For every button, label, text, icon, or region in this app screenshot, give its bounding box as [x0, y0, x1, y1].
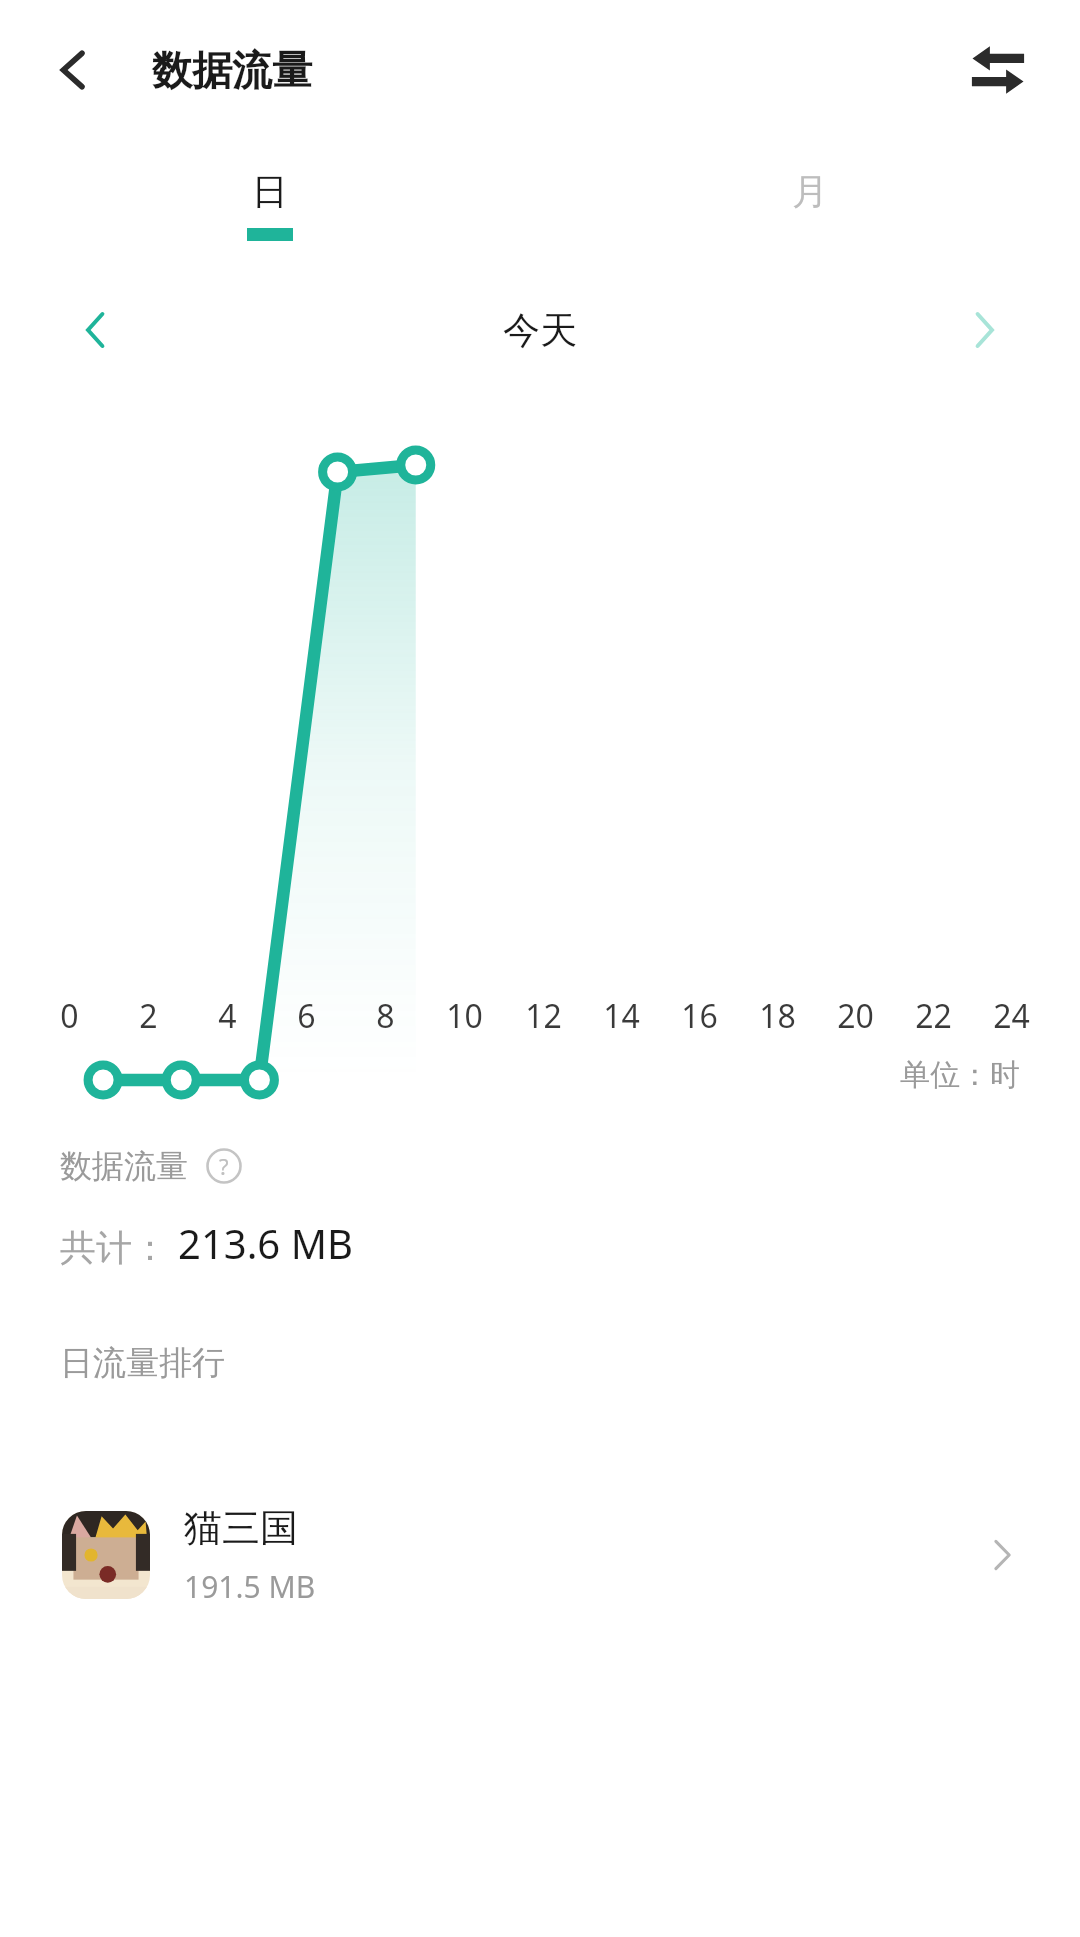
staticText: 18 [759, 994, 796, 1038]
staticText: 191.5 MB [184, 1566, 316, 1607]
staticText: 6 [297, 994, 316, 1038]
button[interactable]: 猫三国 [0, 1480, 1080, 1630]
staticText: 10 [446, 994, 483, 1038]
button[interactable]: Back [30, 26, 118, 114]
staticText: 0 [60, 994, 79, 1038]
staticText: 日 [252, 169, 288, 214]
staticText: 共计： [60, 1225, 168, 1270]
staticText: 日流量排行 [60, 1342, 225, 1384]
staticText: 22 [915, 994, 952, 1038]
staticText: 24 [993, 994, 1030, 1038]
other: Details [972, 1525, 1032, 1585]
staticText: 20 [837, 994, 874, 1038]
staticText: 8 [376, 994, 395, 1038]
button[interactable]: 日 [0, 140, 540, 270]
staticText: 数据流量 [152, 45, 312, 95]
button[interactable]: Next day [942, 288, 1026, 372]
staticText: 月 [792, 169, 828, 214]
staticText: 12 [525, 994, 562, 1038]
staticText: 213.6 MB [178, 1216, 353, 1270]
staticText: 16 [681, 994, 718, 1038]
button[interactable]: Previous day [54, 288, 138, 372]
button[interactable]: Help [202, 1144, 246, 1188]
staticText: 猫三国 [184, 1504, 298, 1552]
button[interactable]: 月 [540, 140, 1080, 270]
staticText: 数据流量 [60, 1146, 188, 1186]
staticText: 4 [218, 994, 237, 1038]
staticText: 14 [603, 994, 640, 1038]
staticText: 今天 [503, 307, 577, 354]
button[interactable]: Switch SIM [950, 22, 1046, 118]
staticText: 2 [139, 994, 158, 1038]
staticText: 单位：时 [900, 1056, 1020, 1094]
staticText: ? [219, 1151, 229, 1181]
